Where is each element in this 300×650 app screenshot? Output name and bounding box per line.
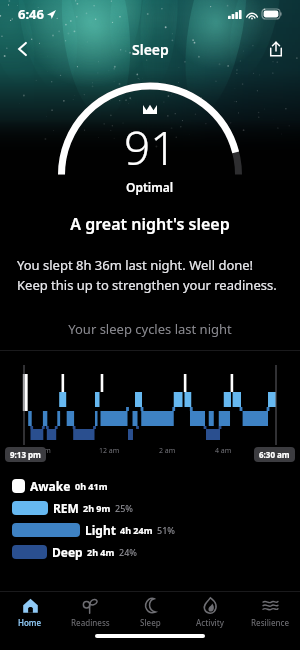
staticText: Home — [18, 617, 42, 628]
staticText: You slept 8h 36m last night. Well done! … — [17, 256, 283, 294]
staticText: Light — [85, 522, 116, 538]
button[interactable]: Deep — [12, 541, 300, 563]
staticText: Your sleep cycles last night — [0, 320, 300, 338]
button[interactable]: Light — [12, 519, 300, 541]
staticText: Readiness — [71, 617, 110, 628]
staticText: pm — [40, 446, 51, 456]
staticText: 12 am — [99, 446, 120, 456]
staticText: 4 am — [215, 446, 232, 456]
button[interactable]: REM — [12, 497, 300, 519]
button[interactable]: Home — [0, 592, 60, 628]
staticText: 2h 4m — [87, 546, 115, 558]
button[interactable]: Share — [260, 33, 292, 65]
staticText: 6:30 am — [259, 449, 290, 460]
staticText: Optimal — [126, 179, 174, 195]
button[interactable]: Readiness — [60, 592, 120, 628]
staticText: 2h 9m — [83, 502, 111, 514]
staticText: Sleep — [140, 617, 161, 628]
staticText: 2 am — [159, 446, 176, 456]
button[interactable]: Sleep — [120, 592, 180, 628]
button[interactable]: Back — [6, 32, 40, 66]
staticText: 0h 41m — [75, 480, 108, 492]
staticText: 25% — [115, 502, 133, 514]
staticText: Resilience — [251, 617, 290, 628]
staticText: 24% — [119, 546, 137, 558]
button[interactable]: Awake — [12, 475, 300, 497]
staticText: REM — [53, 500, 79, 516]
staticText: Awake — [30, 478, 71, 494]
staticText: 4h 24m — [120, 524, 153, 536]
button[interactable]: Resilience — [240, 592, 300, 628]
staticText: 91 — [124, 116, 177, 179]
staticText: Activity — [196, 617, 225, 628]
staticText: 6 — [264, 446, 269, 456]
staticText: 9:13 pm — [10, 449, 41, 460]
staticText: 6:46 — [18, 5, 44, 23]
staticText: 51% — [157, 524, 175, 536]
staticText: Deep — [52, 544, 83, 560]
button[interactable]: Activity — [180, 592, 240, 628]
staticText: A great night's sleep — [0, 213, 300, 235]
staticText: Sleep — [132, 40, 169, 59]
